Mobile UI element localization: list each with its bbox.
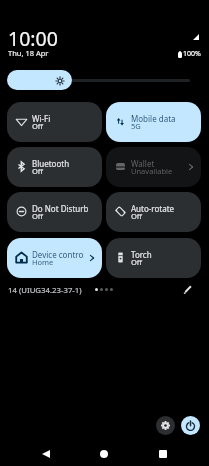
staticText: Home [32, 257, 54, 267]
staticText: 10:00 [8, 25, 58, 52]
button[interactable]: Recents [146, 437, 180, 466]
button[interactable]: Edit tiles [181, 283, 195, 297]
button[interactable]: Mobile data [106, 102, 201, 142]
staticText: Do Not Disturb [32, 203, 89, 214]
staticText: Mobile data [131, 113, 176, 124]
staticText: 100% [183, 49, 201, 59]
button[interactable]: Auto-rotate [106, 192, 201, 232]
button[interactable]: Back [29, 437, 63, 466]
button[interactable]: Wi-Fi [7, 102, 102, 142]
button[interactable]: Settings [156, 416, 175, 435]
button[interactable]: Bluetooth [7, 147, 102, 187]
staticText: 14 (UIUG34.23-37-1) [8, 285, 82, 296]
button[interactable]: Device controls [7, 238, 102, 278]
button[interactable]: Power [181, 416, 200, 435]
button[interactable]: Wallet [106, 147, 201, 187]
staticText: Wi-Fi [32, 113, 51, 124]
staticText: Auto-rotate [131, 203, 175, 214]
staticText: Off [131, 211, 143, 221]
staticText: Thu, 18 Apr [8, 48, 49, 58]
button[interactable]: Torch [106, 238, 201, 278]
staticText: 5G [131, 121, 141, 131]
staticText: Off [32, 121, 44, 131]
staticText: Unavailable [131, 166, 173, 176]
staticText: Bluetooth [32, 158, 70, 169]
button[interactable]: Do Not Disturb [7, 192, 102, 232]
button[interactable]: Brightness [7, 70, 190, 90]
staticText: Wallet [131, 158, 155, 169]
button[interactable]: Home [87, 437, 121, 466]
staticText: Device controls [32, 249, 84, 260]
staticText: Off [32, 166, 44, 176]
staticText: Off [32, 211, 44, 221]
staticText: Torch [131, 249, 152, 260]
staticText: Off [131, 257, 143, 267]
